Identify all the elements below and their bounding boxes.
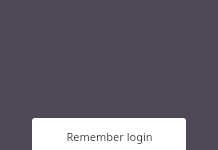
staticText: Remember login [66, 129, 153, 144]
button[interactable]: Remember login [32, 118, 186, 150]
button[interactable]: Ads [0, 110, 218, 134]
